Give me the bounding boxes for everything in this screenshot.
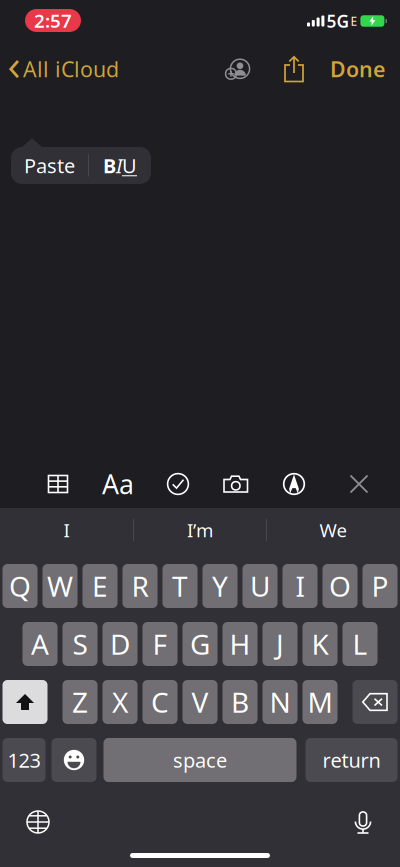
staticText: B (231, 683, 249, 721)
button[interactable]: S (62, 622, 97, 666)
staticText: B (103, 152, 116, 179)
staticText: V (191, 683, 208, 721)
staticText: 2:57 (34, 8, 72, 33)
button[interactable]: space (103, 738, 296, 782)
button[interactable]: A (22, 622, 57, 666)
button[interactable]: P (362, 564, 397, 608)
button[interactable]: We (267, 508, 400, 552)
staticText: We (319, 518, 347, 542)
button[interactable]: N (262, 680, 297, 724)
staticText: D (110, 625, 130, 663)
button[interactable]: Table (40, 464, 76, 504)
button[interactable]: All iCloud (0, 47, 119, 91)
button[interactable]: F (142, 622, 177, 666)
button[interactable]: Y (202, 564, 237, 608)
button[interactable]: M (302, 680, 337, 724)
staticText: Y (212, 567, 228, 605)
staticText: A (31, 625, 49, 663)
button[interactable]: Checklist (160, 464, 196, 504)
staticText: Aa (102, 466, 134, 502)
button[interactable]: 123 (2, 738, 45, 782)
button[interactable]: Format (100, 464, 136, 504)
staticText: H (229, 625, 250, 663)
staticText: 5G (326, 9, 349, 32)
button[interactable]: Shift (2, 680, 47, 724)
staticText: X (112, 683, 128, 721)
staticText: N (269, 683, 290, 721)
button[interactable]: X (102, 680, 137, 724)
button[interactable]: B (222, 680, 257, 724)
button[interactable]: Close Keyboard (341, 464, 377, 504)
staticText: R (131, 567, 148, 605)
staticText: Done (330, 55, 385, 83)
button[interactable]: H (222, 622, 257, 666)
button[interactable]: Delete (352, 680, 397, 724)
button[interactable]: Emoji (51, 738, 96, 782)
button[interactable]: I (282, 564, 317, 608)
button[interactable]: O (322, 564, 357, 608)
button[interactable]: I’m (134, 508, 266, 552)
button[interactable]: return (305, 738, 397, 782)
button[interactable]: Z (62, 680, 97, 724)
button[interactable]: Add People (211, 49, 270, 88)
staticText: K (311, 625, 328, 663)
staticText: P (371, 567, 388, 605)
button[interactable]: E (82, 564, 117, 608)
staticText: O (329, 567, 351, 605)
button[interactable]: D (102, 622, 137, 666)
button[interactable]: C (142, 680, 177, 724)
button[interactable]: G (182, 622, 217, 666)
button[interactable]: Paste (11, 147, 88, 184)
staticText: E (92, 567, 108, 605)
staticText: L (352, 625, 367, 663)
staticText: G (190, 625, 210, 663)
button[interactable]: T (162, 564, 197, 608)
staticText: J (276, 625, 284, 663)
staticText: Z (72, 683, 88, 721)
staticText: Q (9, 567, 31, 605)
button[interactable]: L (342, 622, 377, 666)
button[interactable]: J (262, 622, 297, 666)
button[interactable]: W (42, 564, 77, 608)
button[interactable]: Q (2, 564, 37, 608)
button[interactable]: R (122, 564, 157, 608)
button[interactable]: Bold Italic Underline (89, 147, 151, 184)
button[interactable]: Share (270, 50, 318, 87)
staticText: space (173, 747, 227, 773)
staticText: All iCloud (23, 55, 119, 83)
staticText: S (72, 625, 87, 663)
staticText: T (172, 567, 188, 605)
staticText: C (151, 683, 169, 721)
staticText: Paste (24, 152, 75, 179)
button[interactable]: Switch Keyboard (14, 798, 62, 846)
button[interactable]: Dictate (340, 797, 386, 847)
staticText: U (122, 152, 137, 179)
staticText: I (63, 518, 69, 542)
staticText: return (322, 747, 380, 773)
button[interactable]: I (0, 508, 133, 552)
button[interactable]: V (182, 680, 217, 724)
staticText: 123 (7, 747, 40, 773)
staticText: F (152, 625, 167, 663)
staticText: W (47, 567, 73, 605)
staticText: I (116, 152, 122, 179)
staticText: I’m (187, 518, 213, 542)
button[interactable]: U (242, 564, 277, 608)
button[interactable]: K (302, 622, 337, 666)
button[interactable]: Done (318, 47, 400, 91)
button[interactable]: Camera (218, 464, 254, 504)
staticText: E (350, 13, 357, 29)
button[interactable]: Markup (276, 464, 312, 504)
staticText: I (295, 567, 304, 605)
staticText: U (250, 567, 270, 605)
staticText: M (307, 683, 332, 721)
